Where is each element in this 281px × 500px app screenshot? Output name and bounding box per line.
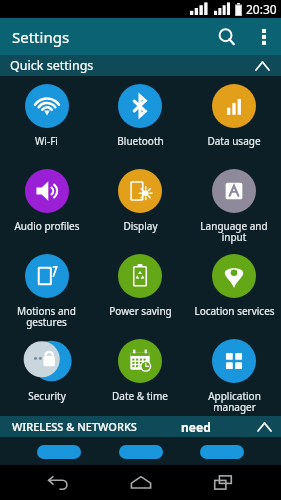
staticText: Language and input [200, 219, 268, 244]
staticText: need [181, 419, 211, 435]
button[interactable]: WIRELESS & NETWORKS [0, 416, 281, 437]
staticText: Location services [194, 304, 275, 318]
button[interactable]: Location services [187, 246, 281, 331]
button[interactable]: Search [207, 18, 247, 55]
button[interactable]: Power saving [93, 246, 187, 331]
staticText: WIRELESS & NETWORKS [12, 419, 137, 434]
button[interactable]: Display [93, 161, 187, 246]
button[interactable]: Date & time [93, 331, 187, 416]
button[interactable]: Recent apps [198, 465, 248, 500]
button[interactable]: Wi-Fi [0, 76, 93, 161]
staticText: Data usage [207, 134, 261, 148]
button[interactable]: Quick settings [0, 55, 281, 76]
staticText: Bluetooth [117, 134, 164, 148]
staticText: Date & time [112, 389, 168, 403]
staticText: Display [123, 219, 158, 233]
staticText: Quick settings [10, 57, 94, 74]
staticText: Application manager [208, 389, 261, 414]
staticText: Security [28, 389, 66, 403]
button[interactable]: Audio profiles [0, 161, 93, 246]
staticText: 20:30 [246, 1, 277, 17]
staticText: Audio profiles [14, 219, 80, 233]
staticText: Motions and gestures [17, 304, 76, 329]
staticText: Power saving [109, 304, 172, 318]
button[interactable]: Back [33, 465, 83, 500]
button[interactable]: Language and input [187, 161, 281, 246]
button[interactable]: Data usage [187, 76, 281, 161]
button[interactable]: Home [116, 465, 166, 500]
button[interactable]: Bluetooth [93, 76, 187, 161]
button[interactable]: Motions and gestures [0, 246, 93, 331]
staticText: Settings [12, 27, 70, 47]
button[interactable]: More options [247, 20, 281, 54]
staticText: Wi-Fi [35, 134, 58, 148]
button[interactable]: Security [0, 331, 93, 416]
button[interactable]: Application manager [187, 331, 281, 416]
